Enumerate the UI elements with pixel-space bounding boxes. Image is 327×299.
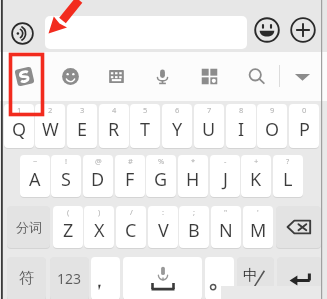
- staticText: 123: [57, 269, 82, 288]
- button[interactable]: Period: [205, 257, 234, 299]
- staticText: @: [95, 156, 102, 166]
- button[interactable]: 6: [162, 104, 192, 148]
- staticText: 6: [175, 105, 180, 115]
- button[interactable]: Voice: [149, 58, 175, 95]
- staticText: ;: [193, 207, 196, 217]
- staticText: J: [223, 167, 228, 192]
- button[interactable]: 8: [226, 104, 256, 148]
- staticText: 符: [19, 269, 34, 288]
- staticText: ?: [286, 156, 290, 166]
- staticText: +: [254, 156, 259, 166]
- staticText: 分词: [16, 219, 42, 235]
- button[interactable]: Keyboard: [103, 58, 129, 95]
- staticText: W: [42, 117, 59, 142]
- staticText: L: [283, 167, 293, 192]
- staticText: ~: [33, 156, 38, 166]
- staticText: :: [162, 207, 165, 217]
- staticText: 1: [17, 105, 22, 115]
- staticText: ': [257, 207, 259, 217]
- staticText: V: [158, 218, 169, 243]
- button[interactable]: ": [211, 206, 241, 248]
- button[interactable]: More: [289, 58, 315, 95]
- button[interactable]: 符: [7, 257, 46, 299]
- staticText: %: [158, 156, 165, 166]
- staticText: M: [250, 218, 267, 243]
- button[interactable]: 分词: [7, 206, 50, 248]
- staticText: K: [250, 167, 262, 192]
- staticText: X: [94, 218, 105, 243]
- staticText: (: [67, 207, 70, 217]
- button[interactable]: ?: [273, 155, 303, 197]
- button[interactable]: *: [178, 155, 208, 197]
- staticText: H: [186, 167, 200, 192]
- staticText: A: [29, 167, 41, 192]
- button[interactable]: 123: [50, 257, 89, 299]
- button[interactable]: 1: [4, 104, 34, 148]
- staticText: 3: [80, 105, 85, 115]
- staticText: 9: [270, 105, 275, 115]
- staticText: 4: [112, 105, 117, 115]
- staticText: 中: [243, 266, 258, 285]
- staticText: C: [125, 218, 137, 243]
- button[interactable]: Sogou: [11, 58, 37, 95]
- staticText: Q: [12, 117, 27, 142]
- staticText: 8: [239, 105, 244, 115]
- button[interactable]: 5: [130, 104, 160, 148]
- staticText: 0: [302, 105, 307, 115]
- button[interactable]: Chinese / English: [237, 257, 274, 299]
- staticText: ": [224, 207, 228, 217]
- button[interactable]: Apps: [196, 58, 222, 95]
- staticText: 7: [207, 105, 212, 115]
- staticText: #: [128, 156, 133, 166]
- button[interactable]: ;: [179, 206, 209, 248]
- button[interactable]: Voice input: [11, 22, 34, 45]
- button[interactable]: @: [83, 155, 113, 197]
- staticText: Z: [63, 218, 74, 243]
- button[interactable]: ': [243, 206, 273, 248]
- staticText: Y: [172, 117, 183, 142]
- button[interactable]: #: [115, 155, 145, 197]
- button[interactable]: -: [210, 155, 240, 197]
- button[interactable]: Comma: [91, 257, 120, 299]
- staticText: G: [154, 167, 168, 192]
- staticText: -: [224, 156, 227, 166]
- button[interactable]: ): [84, 206, 114, 248]
- button[interactable]: Emoticons: [57, 58, 83, 95]
- button[interactable]: !: [51, 155, 81, 197]
- staticText: O: [265, 117, 280, 142]
- staticText: U: [202, 117, 216, 142]
- staticText: T: [140, 117, 151, 142]
- staticText: I: [238, 117, 245, 142]
- button[interactable]: 9: [257, 104, 287, 148]
- staticText: E: [77, 117, 88, 142]
- button[interactable]: +: [241, 155, 271, 197]
- staticText: S: [61, 167, 71, 192]
- button[interactable]: [45, 16, 247, 49]
- staticText: !: [65, 156, 68, 166]
- staticText: /: [130, 207, 133, 217]
- button[interactable]: 2: [35, 104, 65, 148]
- button[interactable]: Enter: [277, 257, 322, 299]
- button[interactable]: Space: [123, 257, 202, 299]
- button[interactable]: Search: [243, 58, 269, 95]
- staticText: *: [191, 156, 196, 166]
- button[interactable]: 4: [99, 104, 129, 148]
- staticText: D: [91, 167, 105, 192]
- staticText: R: [108, 117, 120, 142]
- button[interactable]: Add: [290, 17, 316, 43]
- button[interactable]: 3: [67, 104, 97, 148]
- button[interactable]: 7: [194, 104, 224, 148]
- button[interactable]: :: [148, 206, 178, 248]
- staticText: N: [219, 218, 233, 243]
- staticText: F: [125, 167, 135, 192]
- button[interactable]: %: [146, 155, 176, 197]
- button[interactable]: /: [116, 206, 146, 248]
- button[interactable]: (: [53, 206, 83, 248]
- button[interactable]: Backspace: [276, 206, 321, 248]
- button[interactable]: ~: [20, 155, 50, 197]
- staticText: 2: [48, 105, 53, 115]
- button[interactable]: Emoji: [254, 17, 280, 43]
- staticText: P: [299, 117, 310, 142]
- staticText: B: [188, 218, 200, 243]
- button[interactable]: 0: [289, 104, 319, 148]
